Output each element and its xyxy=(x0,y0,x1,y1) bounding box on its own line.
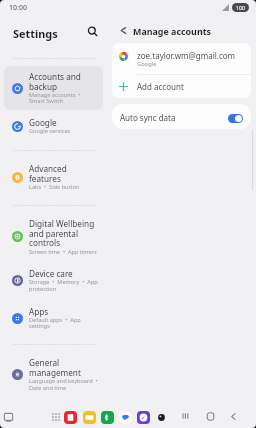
button[interactable]: Recents xyxy=(179,409,193,423)
staticText: Google xyxy=(137,60,157,68)
button[interactable]: App 5 xyxy=(137,411,150,424)
staticText: Storage • Memory • App xyxy=(29,278,98,286)
staticText: Advanced xyxy=(29,163,67,174)
staticText: Google xyxy=(29,117,57,128)
button[interactable]: App 6 xyxy=(155,411,168,424)
button[interactable] xyxy=(4,66,103,110)
button[interactable]: Search xyxy=(83,22,101,40)
button[interactable] xyxy=(4,74,103,105)
staticText: Default apps • App xyxy=(29,316,81,324)
staticText: zoe.taylor.wm@gmail.com xyxy=(137,50,236,61)
button[interactable]: Auto sync data xyxy=(112,104,251,129)
button[interactable] xyxy=(4,220,103,255)
button[interactable]: Home xyxy=(203,409,217,423)
staticText: management xyxy=(29,367,81,378)
staticText: controls xyxy=(29,237,61,248)
staticText: Manage accounts xyxy=(133,25,211,37)
button[interactable]: App 1 xyxy=(64,411,77,424)
button[interactable] xyxy=(4,166,103,191)
button[interactable] xyxy=(4,120,103,135)
staticText: backup xyxy=(29,81,58,92)
button[interactable]: All apps xyxy=(49,410,63,424)
staticText: 100 xyxy=(236,4,245,11)
button[interactable]: App 2 xyxy=(83,411,96,424)
button[interactable]: Back xyxy=(114,22,131,39)
staticText: Smart Switch xyxy=(29,97,64,105)
staticText: and parental xyxy=(29,228,79,239)
staticText: protection xyxy=(29,285,57,293)
button[interactable] xyxy=(4,360,103,391)
staticText: settings xyxy=(29,322,50,330)
staticText: Google services xyxy=(29,127,71,135)
staticText: Auto sync data xyxy=(120,112,176,123)
staticText: Apps xyxy=(29,306,49,317)
button[interactable] xyxy=(4,271,103,293)
staticText: Screen time • App timers xyxy=(29,248,97,256)
staticText: Add account xyxy=(137,81,184,92)
staticText: Labs • Side button xyxy=(29,183,80,191)
staticText: Device care xyxy=(29,268,73,279)
staticText: Digital Wellbeing xyxy=(29,218,95,229)
button[interactable]: zoe.taylor.wm@gmail.com xyxy=(112,43,251,73)
staticText: General xyxy=(29,357,60,368)
staticText: Language and keyboard • xyxy=(29,377,98,385)
staticText: Manage accounts • xyxy=(29,91,81,99)
staticText: Settings xyxy=(13,26,58,41)
button[interactable]: App 3 xyxy=(101,411,114,424)
staticText: 10:00 xyxy=(9,3,27,13)
button[interactable] xyxy=(4,308,103,330)
button[interactable]: Add account xyxy=(112,74,251,98)
button[interactable]: Back xyxy=(226,409,240,423)
staticText: features xyxy=(29,173,61,184)
button[interactable]: App 4 xyxy=(119,411,132,424)
button[interactable]: DeX xyxy=(1,410,15,424)
staticText: Date and time xyxy=(29,384,67,392)
staticText: Accounts and xyxy=(29,71,81,82)
